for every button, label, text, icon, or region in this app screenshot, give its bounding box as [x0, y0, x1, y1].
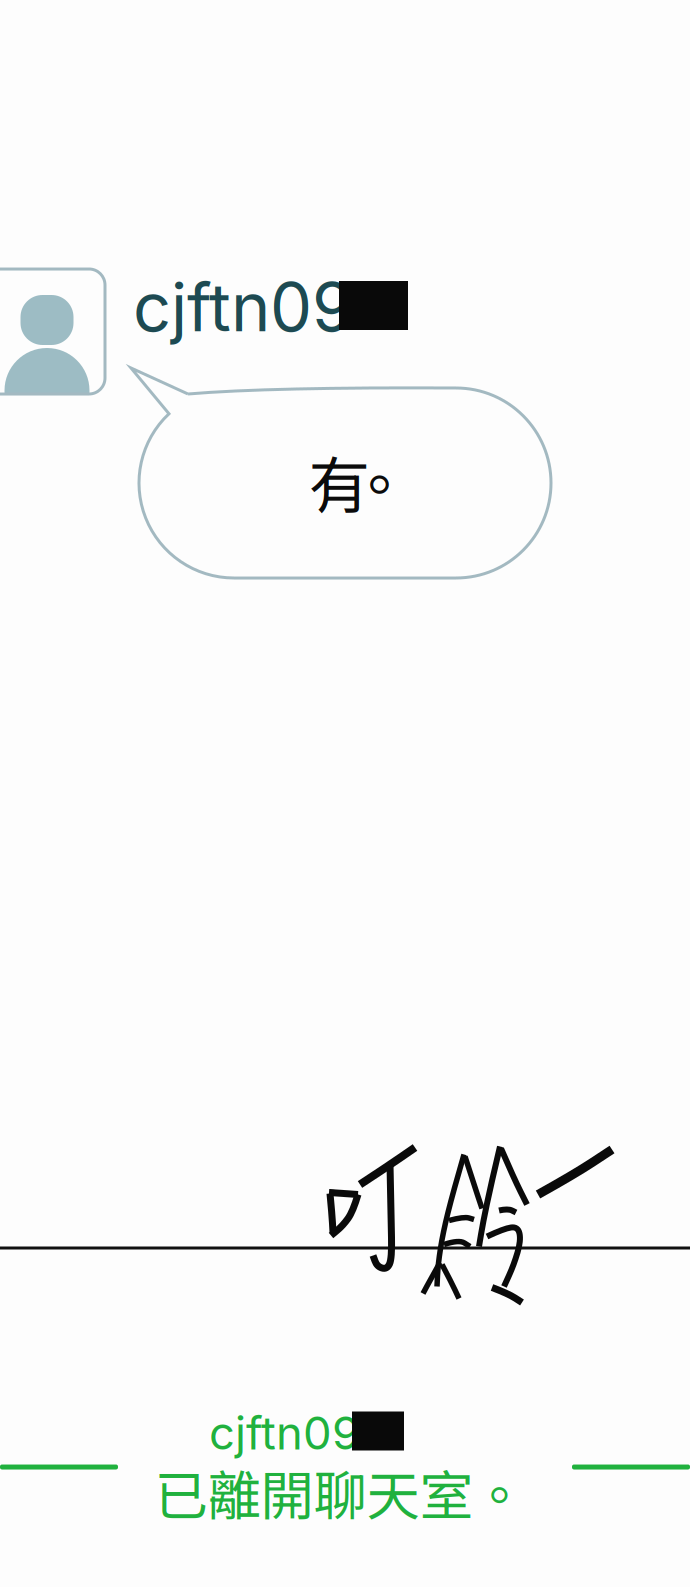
staticText: cjftn09 — [209, 1406, 360, 1460]
staticText: 已離開聊天室。 — [154, 1453, 525, 1531]
staticText: 有 — [308, 437, 369, 525]
staticText: 。 — [348, 437, 409, 525]
staticText: cjftn09 — [133, 267, 353, 347]
